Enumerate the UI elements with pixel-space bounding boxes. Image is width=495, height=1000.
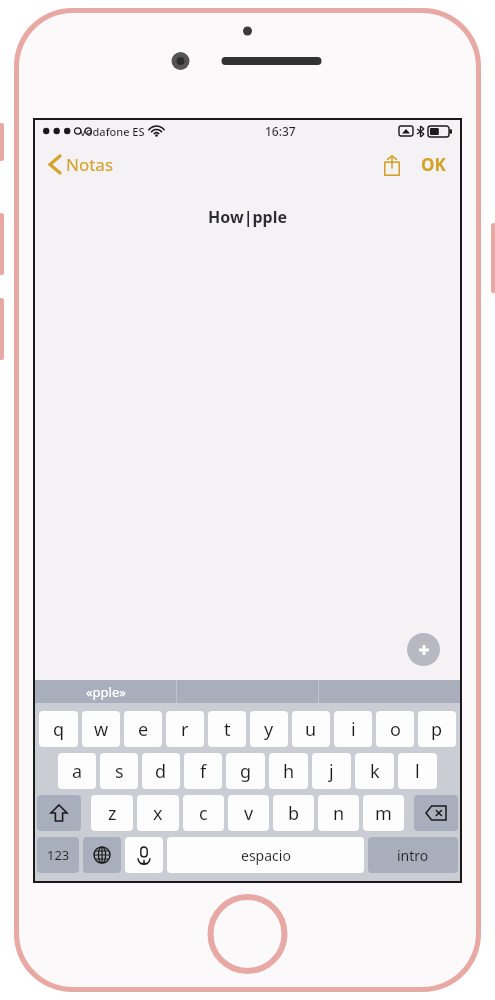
button[interactable]: o [376,711,414,747]
button[interactable]: Numbers [37,837,79,873]
staticText: a [72,759,83,784]
button[interactable]: z [91,795,133,831]
staticText: m [375,801,392,826]
button[interactable]: r [166,711,204,747]
button[interactable]: s [100,753,138,789]
staticText: p [431,717,443,742]
button[interactable]: OK [417,147,450,182]
staticText: How|pple [208,206,287,228]
button[interactable]: Backspace [414,795,458,831]
button[interactable]: g [226,753,265,789]
button[interactable]: h [269,753,308,789]
button[interactable]: e [124,711,162,747]
button[interactable]: Share [377,150,407,180]
staticText: 123 [47,846,70,864]
staticText: v [244,801,254,826]
button[interactable]: espacio [167,837,364,873]
button[interactable]: y [250,711,288,747]
staticText: w [94,717,109,742]
button[interactable]: Notas [45,149,118,180]
button[interactable]: x [137,795,179,831]
button[interactable]: l [398,753,437,789]
button[interactable]: v [228,795,269,831]
staticText: x [153,801,163,826]
button[interactable]: n [318,795,359,831]
staticText: Notas [66,153,114,176]
staticText: s [115,759,124,784]
staticText: u [305,717,317,742]
button[interactable]: t [208,711,246,747]
staticText: 16:37 [265,123,296,139]
button[interactable]: m [363,795,404,831]
staticText: j [329,759,334,784]
staticText: f [200,759,207,784]
staticText: n [333,801,345,826]
button[interactable]: Shift [37,795,81,831]
button[interactable]: k [355,753,394,789]
button[interactable]: f [184,753,222,789]
staticText: t [224,717,231,742]
button[interactable]: d [142,753,180,789]
staticText: g [240,759,252,784]
staticText: i [351,717,356,742]
button[interactable]: Add [407,633,440,666]
button[interactable]: q [39,711,78,747]
staticText: vodafone ES [80,124,145,139]
button[interactable]: Dictate [125,837,163,873]
staticText: l [415,759,420,784]
staticText: k [370,759,380,784]
staticText: r [181,717,189,742]
staticText: h [283,759,295,784]
staticText: OK [421,153,446,176]
staticText: d [155,759,167,784]
button[interactable]: b [273,795,314,831]
button[interactable]: j [312,753,351,789]
button[interactable]: u [292,711,330,747]
button[interactable]: w [82,711,120,747]
button[interactable]: intro [368,837,458,873]
staticText: intro [397,846,429,865]
staticText: e [138,717,149,742]
button[interactable]: a [58,753,96,789]
button[interactable]: «pple» [35,680,176,703]
button[interactable]: c [183,795,224,831]
button[interactable]: i [334,711,372,747]
staticText: q [53,717,65,742]
staticText: o [390,717,401,742]
button[interactable]: p [418,711,456,747]
staticText: b [288,801,300,826]
button[interactable]: Change language [83,837,121,873]
staticText: espacio [241,846,291,865]
staticText: «pple» [86,683,126,701]
staticText: c [199,801,208,826]
staticText: y [264,717,274,742]
staticText: z [108,801,117,826]
